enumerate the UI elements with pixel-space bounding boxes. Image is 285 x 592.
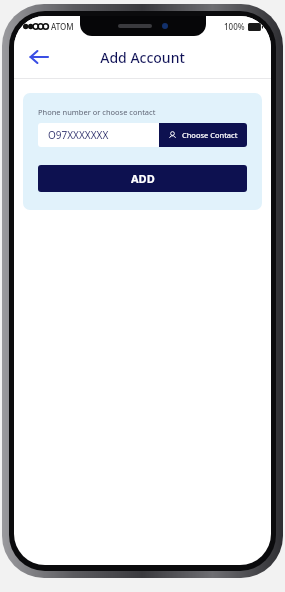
staticText: Choose Contact (182, 130, 238, 140)
button[interactable]: O97XXXXXXX (38, 123, 159, 147)
button[interactable]: Choose Contact (159, 123, 247, 147)
button[interactable]: ADD (38, 165, 247, 192)
staticText: ADD (131, 171, 155, 186)
staticText: O97XXXXXXX (48, 128, 109, 142)
staticText: ATOM (51, 21, 74, 32)
staticText: Phone number or choose contact (38, 107, 156, 117)
staticText: Add Account (100, 48, 185, 67)
button[interactable]: Back (22, 40, 56, 74)
staticText: 100% (224, 21, 245, 32)
